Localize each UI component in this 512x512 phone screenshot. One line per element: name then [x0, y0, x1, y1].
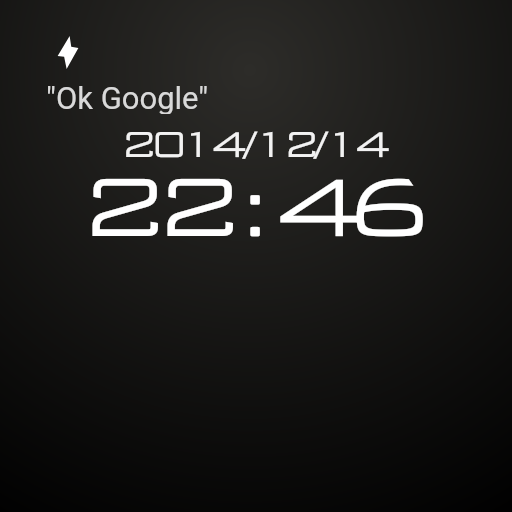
staticText: "Ok Google": [46, 80, 209, 114]
button[interactable]: Watch face, 22:46, 2014/12/14: [0, 0, 512, 512]
button[interactable]: "Ok Google": [46, 80, 214, 114]
button[interactable]: Charging: [56, 34, 81, 71]
